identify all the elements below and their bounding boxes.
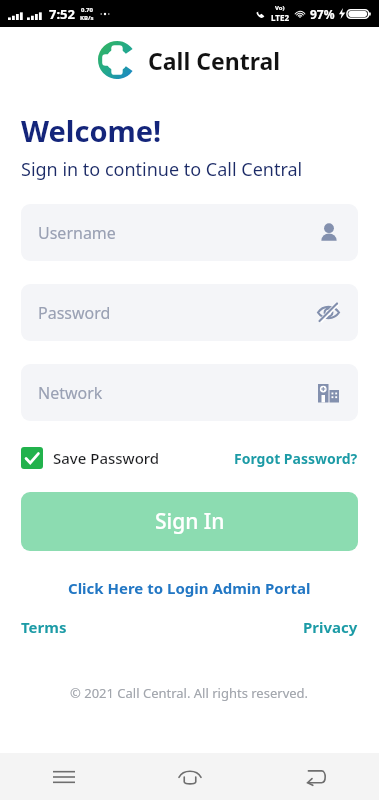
staticText: Privacy [303,617,358,637]
staticText: Sign In [155,507,225,536]
button[interactable]: Password [21,284,358,341]
other: Username [317,221,341,245]
staticText: 0.70 [81,6,93,14]
button[interactable]: Recent apps [0,753,127,800]
staticText: 7:52 [49,5,75,23]
staticText: Password [38,302,111,324]
button[interactable]: Sign In [21,492,358,551]
button[interactable]: Username [21,204,358,261]
button[interactable]: Click Here to Login Admin Portal [21,575,358,601]
staticText: Welcome! [21,111,162,150]
other: Network [316,380,341,405]
staticText: Network [38,382,103,404]
button[interactable]: Save Password [21,443,160,473]
staticText: Click Here to Login Admin Portal [68,578,311,598]
button[interactable]: Network [21,364,358,421]
button[interactable]: Forgot Password? [234,445,358,472]
staticText: Save Password [53,448,160,468]
staticText: 97% [310,6,335,22]
staticText: Sign in to continue to Call Central [21,157,303,182]
staticText: Forgot Password? [234,449,358,468]
button[interactable]: Terms [21,614,67,640]
staticText: Terms [21,617,67,637]
staticText: Username [38,222,116,244]
other: Toggle password visibility [316,300,341,325]
staticText: Call Central [148,45,281,76]
staticText: KB/s [80,14,94,22]
staticText: LTE2 [271,12,289,23]
button[interactable]: Home [127,753,253,800]
button[interactable]: Privacy [303,614,358,640]
staticText: © 2021 Call Central. All rights reserved… [70,684,309,702]
staticText: Vo) [275,4,285,12]
button[interactable]: Back [253,753,379,800]
